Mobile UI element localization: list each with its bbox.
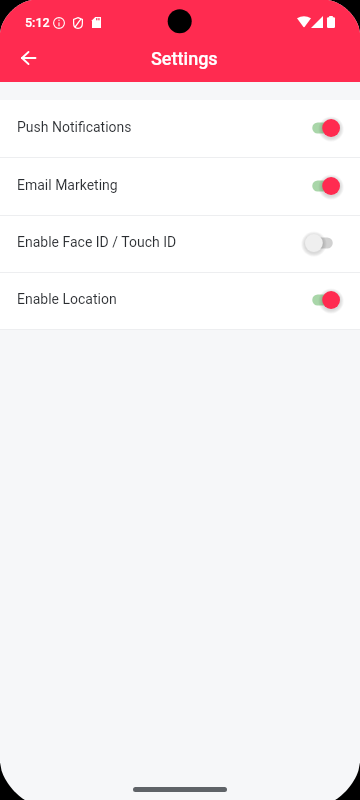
button[interactable]: Back [10,40,46,76]
button[interactable]: Enable Location [0,273,360,329]
button[interactable]: Enable Face ID / Touch ID [0,216,360,272]
staticText: Enable Face ID / Touch ID [17,234,177,250]
staticText: Settings [151,48,218,69]
staticText: 5:12 [25,15,50,30]
staticText: Email Marketing [17,177,118,193]
staticText: Push Notifications [17,119,132,135]
button[interactable]: Email Marketing [0,158,360,215]
button[interactable]: Push Notifications [0,100,360,157]
staticText: Enable Location [17,291,117,307]
